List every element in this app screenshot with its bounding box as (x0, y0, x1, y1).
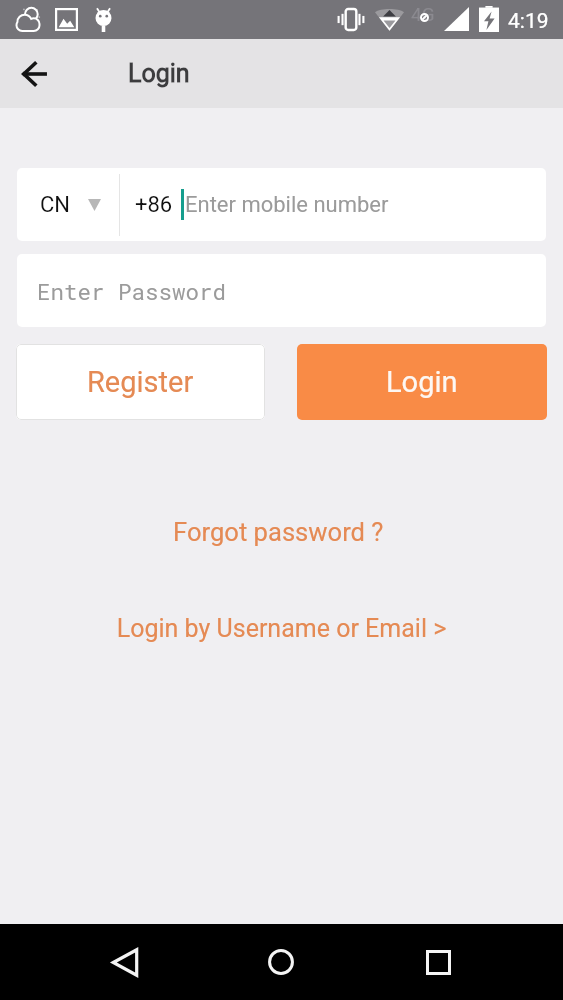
staticText: CN (40, 192, 71, 218)
button[interactable]: Back (97, 934, 153, 990)
button[interactable]: CN (17, 168, 119, 241)
staticText: Login (386, 365, 458, 399)
button[interactable]: Login by Username or Email > (0, 614, 563, 643)
staticText: Enter Password (37, 276, 227, 306)
staticText: Login (128, 59, 190, 88)
button[interactable]: Forgot password ? (173, 517, 384, 547)
button[interactable]: Register (16, 344, 265, 420)
staticText: Enter mobile number (185, 192, 389, 218)
staticText: +86 (135, 192, 173, 218)
staticText: Register (87, 365, 194, 399)
staticText: 4G (411, 3, 435, 25)
staticText: 4:19 (508, 9, 549, 34)
button[interactable]: Recents (410, 934, 466, 990)
button[interactable]: Back (6, 46, 62, 102)
button[interactable]: Login (297, 344, 547, 420)
button[interactable]: Home (253, 934, 309, 990)
button[interactable]: Enter Password (17, 254, 546, 327)
